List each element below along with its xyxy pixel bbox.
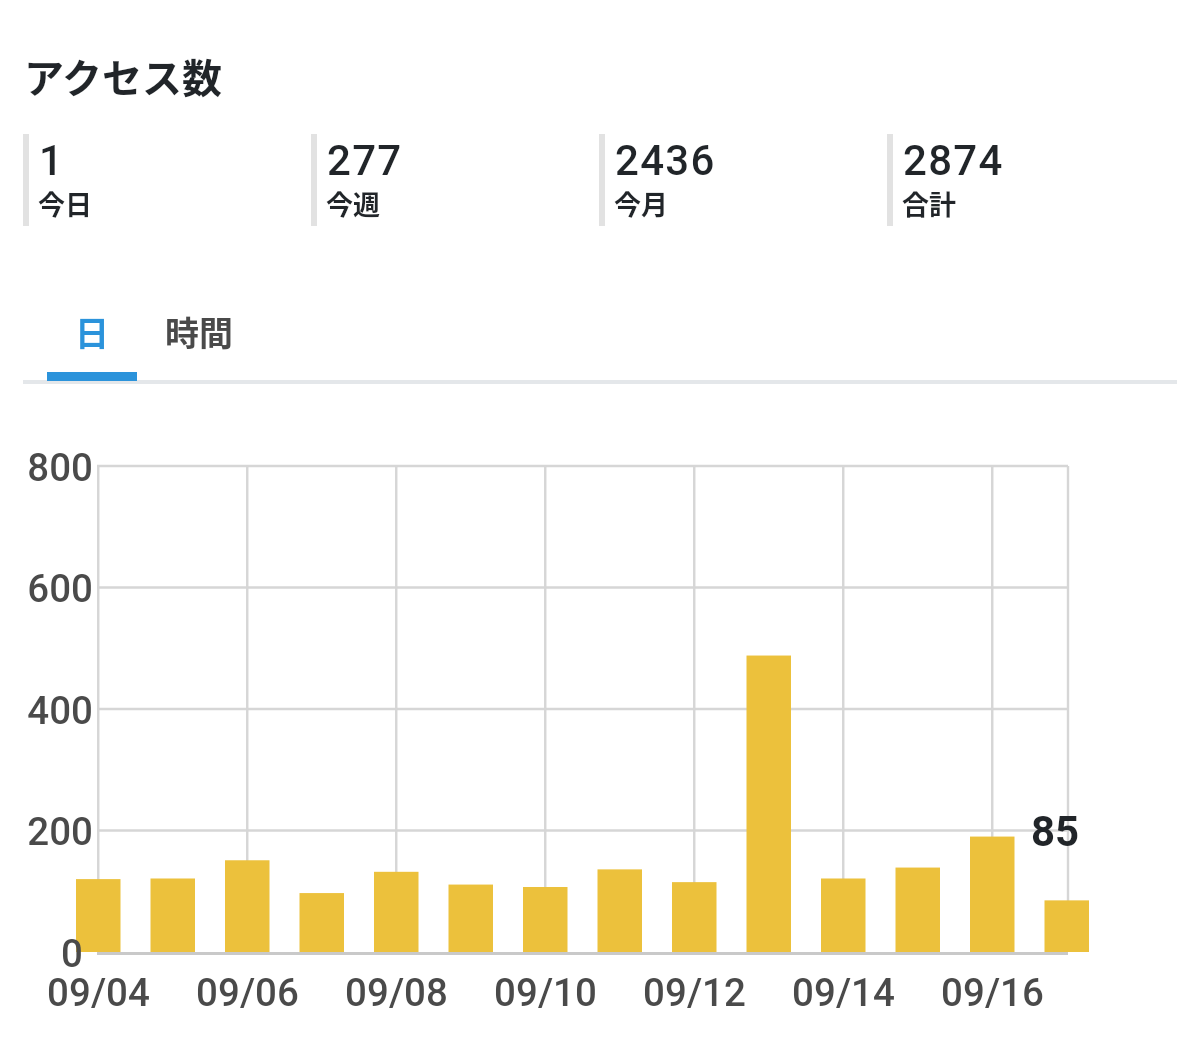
button[interactable]: 日 (47, 296, 137, 382)
staticText: 600 (27, 566, 93, 611)
staticText: 09/14 (792, 970, 895, 1015)
button[interactable]: 2874 (887, 134, 1169, 226)
staticText: 0 (61, 931, 83, 976)
button[interactable]: 時間 (152, 296, 246, 382)
staticText: 09/10 (494, 970, 597, 1015)
staticText: 2874 (903, 136, 1004, 185)
staticText: 277 (327, 136, 403, 185)
staticText: 200 (27, 809, 93, 854)
other: Daily access count bar chart (0, 0, 1200, 1043)
button[interactable]: 2436 (599, 134, 881, 226)
staticText: 09/04 (47, 970, 150, 1015)
button[interactable]: 277 (311, 134, 593, 226)
staticText: 09/06 (196, 970, 299, 1015)
staticText: 今月 (614, 184, 668, 223)
staticText: 日 (75, 307, 109, 356)
staticText: 09/16 (941, 970, 1044, 1015)
staticText: 合計 (902, 184, 956, 223)
staticText: 09/08 (345, 970, 448, 1015)
staticText: 2436 (615, 136, 716, 185)
staticText: 85 (1031, 807, 1080, 856)
staticText: 400 (27, 688, 93, 733)
staticText: 今週 (326, 184, 380, 223)
staticText: 1 (39, 136, 65, 185)
staticText: 09/12 (643, 970, 746, 1015)
staticText: 今日 (38, 184, 92, 223)
staticText: 時間 (165, 307, 233, 356)
button[interactable]: 1 (23, 134, 305, 226)
staticText: アクセス数 (24, 47, 222, 105)
staticText: 800 (27, 445, 93, 490)
